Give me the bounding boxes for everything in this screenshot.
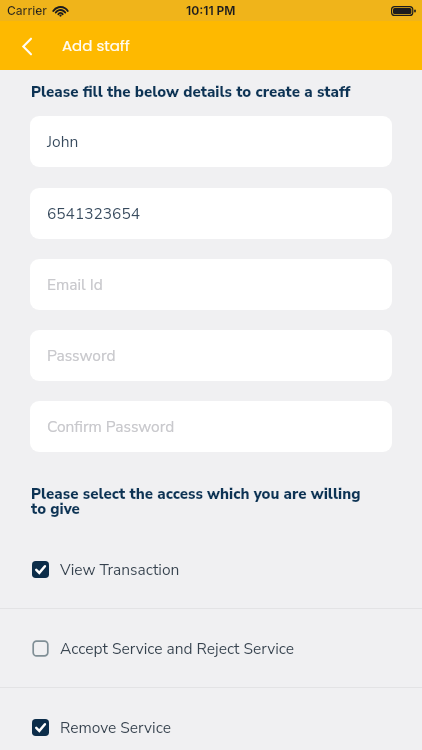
staticText: Email Id: [47, 274, 103, 295]
button[interactable]: Remove Service: [0, 688, 422, 750]
staticText: John: [47, 131, 79, 152]
button[interactable]: Password: [30, 330, 392, 381]
staticText: Add staff: [62, 35, 130, 56]
staticText: Carrier: [7, 3, 47, 18]
button[interactable]: John: [30, 116, 392, 167]
button[interactable]: 6541323654: [30, 188, 392, 239]
button[interactable]: Back: [8, 27, 46, 65]
button[interactable]: Accept Service and Reject Service: [0, 609, 422, 687]
staticText: Please fill the below details to create …: [31, 82, 351, 102]
staticText: Confirm Password: [47, 416, 175, 437]
staticText: 10:11 PM: [186, 3, 236, 18]
staticText: 6541323654: [47, 203, 141, 224]
staticText: Password: [47, 345, 116, 366]
button[interactable]: Confirm Password: [30, 401, 392, 452]
staticText: Please select the access which you are w…: [31, 484, 366, 519]
button[interactable]: Email Id: [30, 259, 392, 310]
staticText: Remove Service: [60, 717, 171, 738]
staticText: View Transaction: [60, 559, 180, 580]
staticText: Accept Service and Reject Service: [60, 638, 295, 659]
button[interactable]: View Transaction: [0, 530, 422, 608]
